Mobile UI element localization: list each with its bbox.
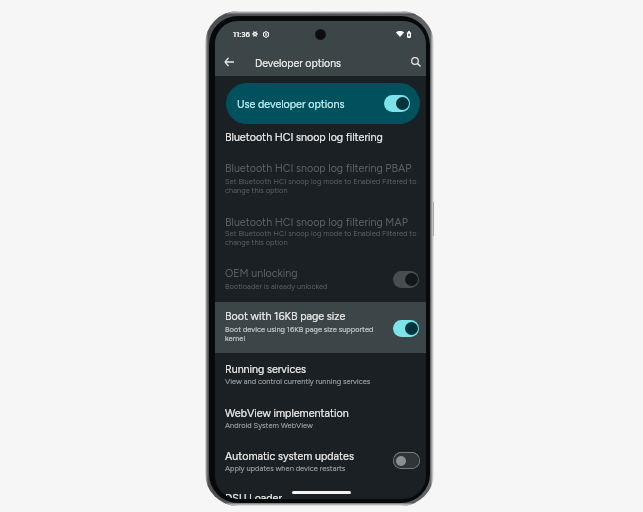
staticText: Apply updates when device restarts [225, 464, 385, 473]
button[interactable]: Toggle [393, 452, 420, 469]
button[interactable]: DSU Loader [215, 488, 426, 499]
staticText: Boot device using 16KB page size support… [225, 325, 381, 343]
button[interactable]: Back [217, 50, 240, 73]
staticText: DSU Loader [225, 492, 283, 499]
button[interactable]: Use developer options [226, 83, 420, 124]
staticText: Bluetooth HCI snoop log filtering [225, 131, 383, 144]
staticText: Use developer options [237, 98, 345, 111]
button[interactable]: Automatic system updates [215, 444, 426, 488]
staticText: Running services [225, 363, 307, 376]
button[interactable]: Bluetooth HCI snoop log filtering MAP [215, 206, 426, 257]
staticText: Set Bluetooth HCI snoop log mode to Enab… [225, 229, 421, 247]
staticText: WebView implementation [225, 407, 349, 420]
staticText: Android System WebView [225, 421, 416, 430]
staticText: Boot with 16KB page size [225, 310, 346, 323]
staticText: Developer options [255, 57, 341, 70]
staticText: 11:36 [233, 30, 250, 39]
staticText: Bluetooth HCI snoop log filtering PBAP [225, 162, 412, 175]
button[interactable]: Toggle [393, 271, 419, 288]
button[interactable]: Bluetooth HCI snoop log filtering [215, 126, 426, 156]
staticText: Bluetooth HCI snoop log filtering MAP [225, 216, 408, 229]
staticText: Bootloader is already unlocked [225, 282, 385, 291]
button[interactable]: Boot with 16KB page size [215, 302, 426, 353]
staticText: Set Bluetooth HCI snoop log mode to Enab… [225, 177, 421, 195]
button[interactable]: Toggle [384, 95, 410, 112]
button[interactable]: Running services [215, 353, 426, 402]
button[interactable]: Bluetooth HCI snoop log filtering PBAP [215, 155, 426, 206]
button[interactable]: OEM unlocking [215, 258, 426, 302]
staticText: Automatic system updates [225, 450, 354, 463]
button[interactable]: Search [404, 50, 426, 73]
staticText: OEM unlocking [225, 267, 298, 280]
button[interactable]: WebView implementation [215, 402, 426, 444]
button[interactable]: Toggle [393, 320, 419, 337]
staticText: View and control currently running servi… [225, 377, 416, 386]
